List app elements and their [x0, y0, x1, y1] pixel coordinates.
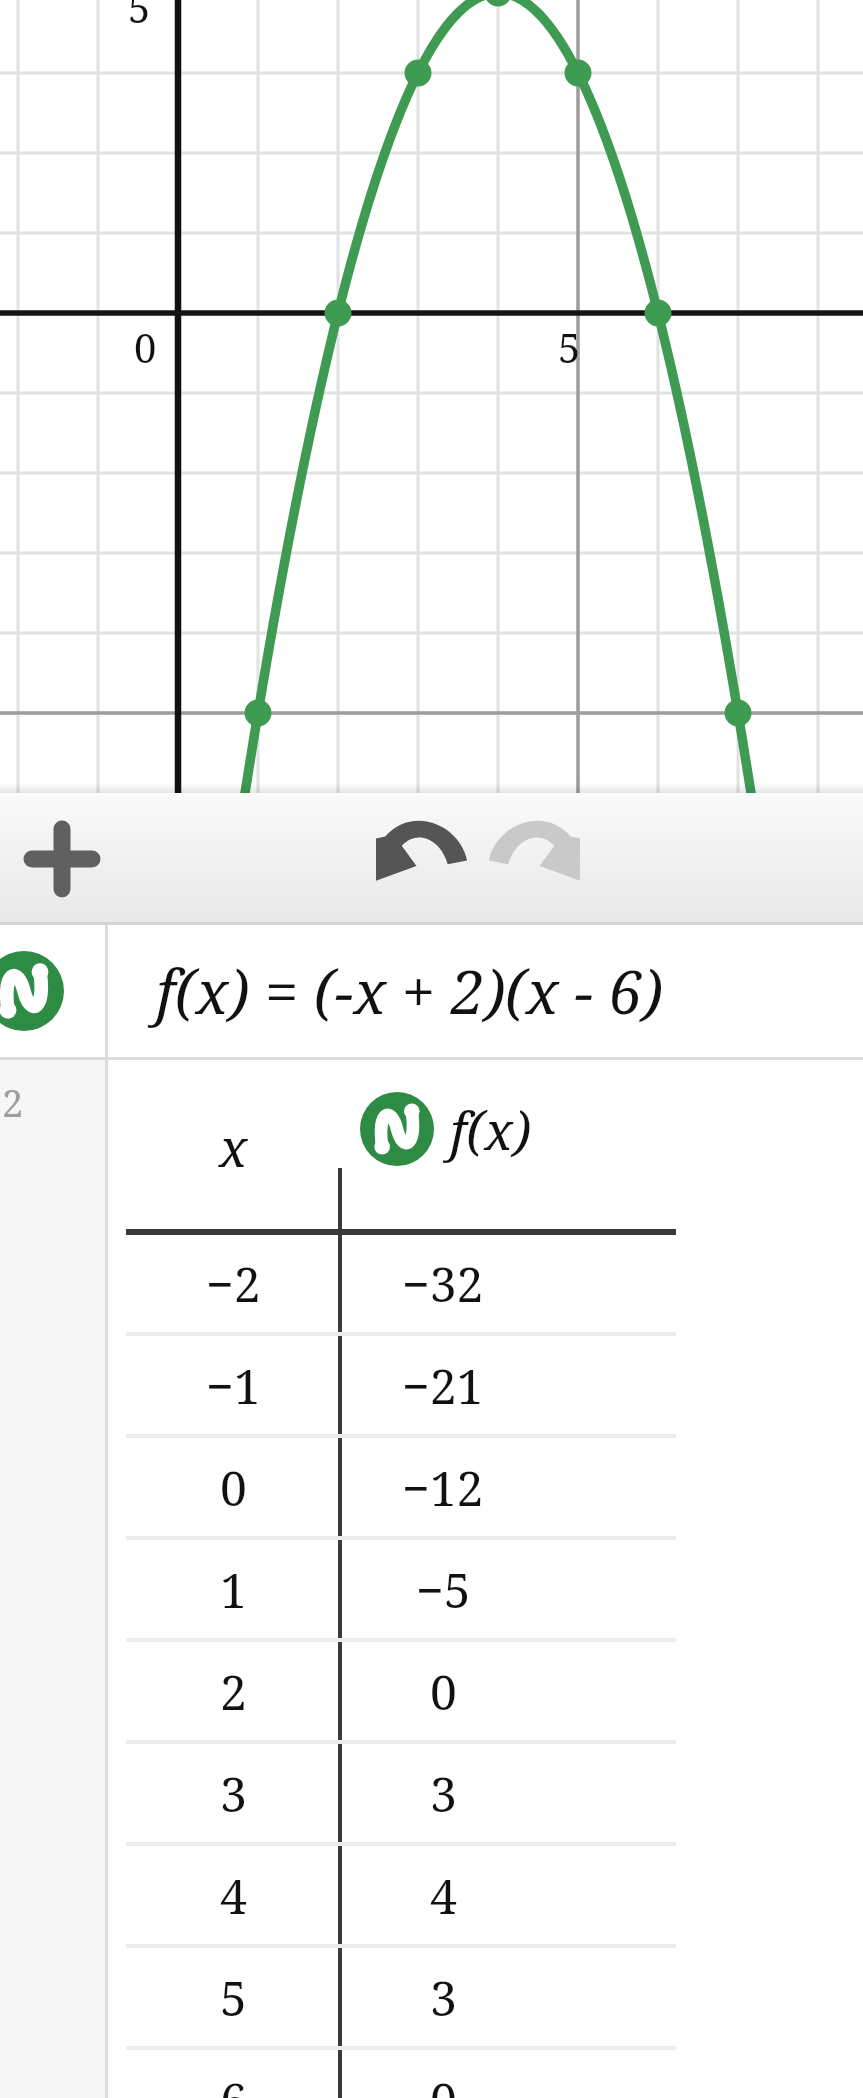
- staticText: −2: [206, 1251, 261, 1316]
- button[interactable]: x: [108, 1060, 863, 2098]
- staticText: f(x): [450, 1094, 531, 1165]
- staticText: 0: [430, 1659, 457, 1724]
- staticText: 5: [558, 320, 581, 374]
- button[interactable]: [0, 925, 105, 1057]
- staticText: 5: [128, 0, 151, 34]
- button[interactable]: 5: [0, 0, 863, 793]
- staticText: 3: [430, 1761, 457, 1826]
- staticText: −1: [206, 1353, 261, 1418]
- button[interactable]: Redo: [488, 809, 580, 901]
- staticText: −21: [402, 1353, 484, 1418]
- staticText: 3: [430, 1965, 457, 2030]
- staticText: 0: [220, 1455, 247, 1520]
- staticText: −12: [402, 1455, 484, 1520]
- button[interactable]: Add expression: [18, 815, 106, 903]
- staticText: 0: [430, 2067, 457, 2098]
- staticText: 2: [220, 1659, 247, 1724]
- staticText: 4: [430, 1863, 457, 1928]
- staticText: 0: [134, 320, 157, 374]
- staticText: 5: [220, 1965, 247, 2030]
- button[interactable]: 2: [0, 1060, 105, 2098]
- staticText: −32: [402, 1251, 484, 1316]
- staticText: 6: [220, 2067, 247, 2098]
- button[interactable]: f(x) = (−x + 2)(x − 6): [108, 925, 863, 1057]
- staticText: 2: [2, 1076, 24, 1128]
- button[interactable]: Undo: [376, 809, 468, 901]
- staticText: x: [219, 1111, 248, 1182]
- staticText: 1: [220, 1557, 247, 1622]
- staticText: −5: [416, 1557, 471, 1622]
- staticText: f(x) = (−x + 2)(x − 6): [156, 950, 663, 1032]
- staticText: 3: [220, 1761, 247, 1826]
- staticText: 4: [220, 1863, 247, 1928]
